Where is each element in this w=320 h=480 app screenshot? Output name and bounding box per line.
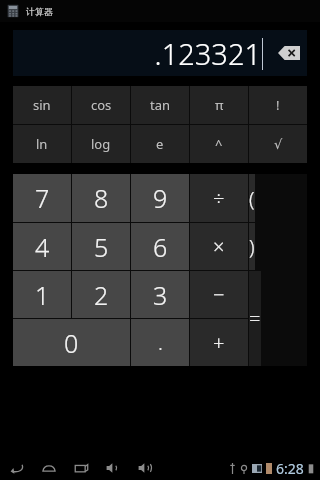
staticText: sin — [33, 96, 51, 114]
staticText: .123321 — [154, 34, 261, 73]
button[interactable]: 0 — [13, 319, 130, 366]
staticText: 5 — [94, 230, 109, 264]
button[interactable]: = — [249, 271, 261, 366]
staticText: 计算器 — [26, 6, 53, 17]
button[interactable]: Volume up — [136, 459, 154, 477]
button[interactable]: log — [72, 125, 130, 163]
button[interactable]: π — [190, 86, 248, 124]
staticText: ÷ — [213, 185, 225, 212]
button[interactable]: 5 — [72, 223, 130, 270]
staticText: √ — [274, 137, 283, 152]
staticText: 4 — [35, 230, 50, 264]
button[interactable]: Recent apps — [72, 459, 90, 477]
button[interactable]: Backspace — [271, 30, 307, 76]
staticText: cos — [91, 96, 112, 114]
staticText: 9 — [153, 181, 168, 215]
button[interactable]: 2 — [72, 271, 130, 318]
staticText: ) — [249, 233, 255, 260]
button[interactable]: ln — [13, 125, 71, 163]
staticText: × — [213, 233, 225, 260]
button[interactable]: 6 — [131, 223, 189, 270]
staticText: 1 — [35, 278, 50, 312]
button[interactable]: sin — [13, 86, 71, 124]
staticText: 7 — [35, 181, 50, 215]
staticText: ( — [249, 185, 255, 212]
staticText: 0 — [64, 326, 79, 360]
staticText: 3 — [153, 278, 168, 312]
button[interactable]: cos — [72, 86, 130, 124]
staticText: tan — [150, 96, 171, 114]
button[interactable]: 1 — [13, 271, 71, 318]
button[interactable]: . — [131, 319, 189, 366]
staticText: ! — [276, 96, 280, 114]
staticText: − — [213, 281, 225, 308]
button[interactable]: 8 — [72, 174, 130, 222]
staticText: 6:28 — [276, 459, 304, 478]
staticText: + — [213, 329, 225, 356]
button[interactable]: √ — [249, 125, 307, 163]
staticText: 8 — [94, 181, 109, 215]
staticText: 6 — [153, 230, 168, 264]
staticText: ^ — [215, 135, 223, 153]
staticText: e — [156, 135, 164, 153]
button[interactable]: ÷ — [190, 174, 248, 222]
staticText: ln — [36, 135, 48, 153]
staticText: π — [215, 96, 224, 114]
button[interactable]: e — [131, 125, 189, 163]
button[interactable]: 7 — [13, 174, 71, 222]
button[interactable]: ( — [249, 174, 255, 222]
staticText: . — [158, 329, 163, 356]
button[interactable]: Back — [8, 459, 26, 477]
button[interactable]: tan — [131, 86, 189, 124]
button[interactable]: + — [190, 319, 248, 366]
button[interactable]: − — [190, 271, 248, 318]
staticText: = — [249, 305, 261, 332]
staticText: log — [91, 135, 111, 153]
button[interactable]: Volume down — [104, 459, 122, 477]
button[interactable]: 9 — [131, 174, 189, 222]
button[interactable]: 3 — [131, 271, 189, 318]
button[interactable]: ! — [249, 86, 307, 124]
staticText: 2 — [94, 278, 109, 312]
button[interactable]: ) — [249, 223, 255, 270]
button[interactable]: × — [190, 223, 248, 270]
button[interactable]: Home — [40, 459, 58, 477]
button[interactable]: 4 — [13, 223, 71, 270]
button[interactable]: ^ — [190, 125, 248, 163]
